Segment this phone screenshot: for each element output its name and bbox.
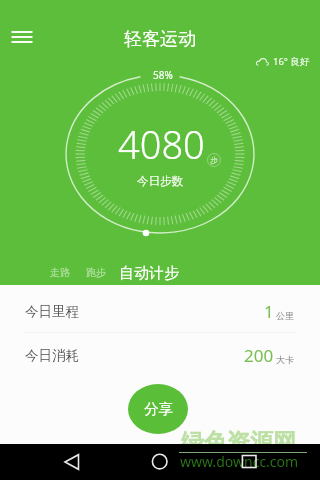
staticText: 自动计步	[119, 264, 179, 283]
button[interactable]: Menu	[9, 24, 35, 50]
staticText: 分享	[144, 400, 173, 418]
staticText: 16° 良好	[273, 55, 310, 68]
button[interactable]: Recent apps	[235, 448, 263, 476]
staticText: 4080	[118, 118, 205, 170]
button[interactable]: 分享	[128, 384, 188, 434]
staticText: 走路	[50, 266, 70, 279]
staticText: 今日消耗	[25, 347, 79, 364]
button[interactable]: 今日消耗	[0, 332, 320, 378]
staticText: www.downcc.com	[180, 452, 299, 471]
button[interactable]: Home	[146, 448, 174, 476]
staticText: 58%	[153, 68, 173, 82]
button[interactable]: 今日里程	[0, 288, 320, 334]
button[interactable]: 跑步	[86, 266, 106, 279]
staticText: 公里	[276, 310, 294, 321]
staticText: 今日里程	[25, 303, 79, 320]
staticText: 1	[264, 300, 274, 323]
staticText: 大卡	[276, 354, 294, 365]
button[interactable]: 自动计步	[119, 264, 179, 283]
staticText: 200	[244, 344, 274, 367]
staticText: 轻客运动	[124, 28, 196, 51]
staticText: 步	[210, 155, 218, 165]
button[interactable]: Back	[58, 448, 86, 476]
staticText: 今日步数	[137, 174, 183, 188]
staticText: 跑步	[86, 266, 106, 279]
button[interactable]: 走路	[50, 266, 70, 279]
staticText: 绿色资源网	[181, 428, 296, 457]
